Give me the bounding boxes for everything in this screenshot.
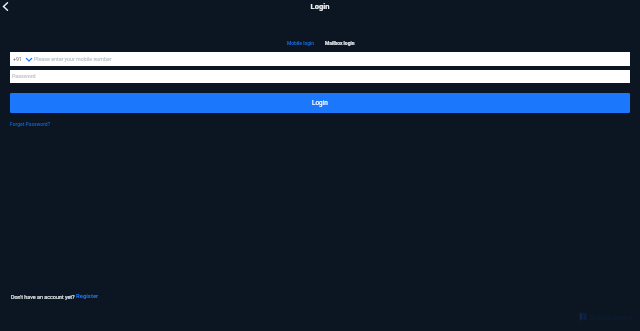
staticText: Login <box>312 99 328 107</box>
button[interactable]: Login <box>10 93 630 113</box>
button[interactable]: Mobile login <box>285 39 316 47</box>
staticText: Forget Password? <box>10 121 50 127</box>
button[interactable]: Forget Password? <box>8 120 52 128</box>
staticText: Don't have an account yet? <box>11 294 76 300</box>
staticText: Login <box>0 2 640 11</box>
staticText: Register <box>76 293 99 300</box>
button[interactable]: Password <box>10 70 630 83</box>
button[interactable]: Mailbox login <box>323 39 357 47</box>
staticText: Please enter your mobile number <box>34 56 112 62</box>
staticText: Mailbox login <box>325 40 355 46</box>
staticText: Password <box>12 73 36 79</box>
button[interactable]: Select country code, +91 <box>10 52 32 66</box>
staticText: +91 <box>13 56 22 62</box>
button[interactable]: Back <box>0 0 12 13</box>
staticText: Mobile login <box>287 40 314 46</box>
staticText: ScanMalware <box>589 313 633 321</box>
button[interactable]: Please enter your mobile number <box>32 52 630 66</box>
button[interactable]: Register <box>76 293 99 300</box>
